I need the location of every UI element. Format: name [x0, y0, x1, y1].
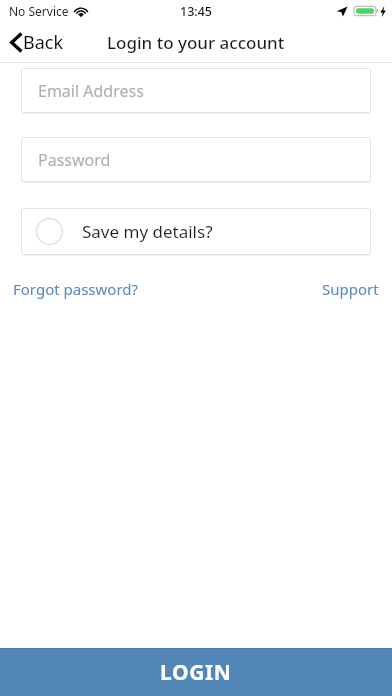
button[interactable]: Support: [320, 276, 381, 302]
staticText: Login to your account: [107, 31, 285, 54]
button[interactable]: Password: [21, 137, 371, 182]
staticText: 13:45: [180, 3, 213, 20]
button[interactable]: Email Address: [21, 68, 371, 113]
staticText: No Service: [9, 3, 69, 19]
button[interactable]: Save my details?: [21, 208, 371, 255]
button[interactable]: LOGIN: [0, 649, 392, 696]
staticText: Back: [23, 30, 64, 55]
button[interactable]: Forgot password?: [11, 276, 141, 302]
staticText: LOGIN: [160, 658, 232, 687]
staticText: Support: [322, 279, 379, 299]
staticText: Password: [38, 149, 111, 171]
button[interactable]: Back: [0, 24, 74, 61]
staticText: Forgot password?: [13, 279, 139, 299]
staticText: Save my details?: [82, 220, 213, 243]
staticText: Email Address: [38, 80, 144, 102]
